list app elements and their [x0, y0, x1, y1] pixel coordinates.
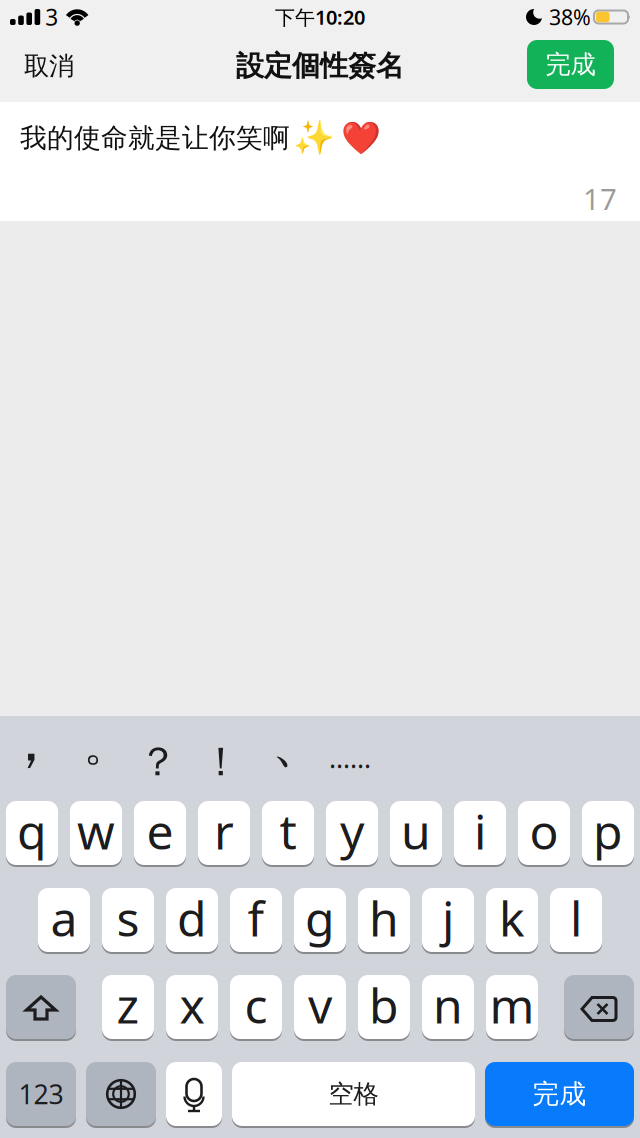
- staticText: d: [177, 886, 207, 950]
- staticText: r: [214, 799, 234, 863]
- staticText: t: [279, 799, 296, 863]
- button[interactable]: b: [358, 975, 410, 1039]
- button[interactable]: ！: [190, 722, 252, 802]
- button[interactable]: q: [6, 801, 58, 865]
- button[interactable]: l: [550, 888, 602, 952]
- staticText: q: [17, 799, 47, 863]
- staticText: z: [116, 973, 139, 1037]
- staticText: p: [593, 799, 623, 863]
- button[interactable]: i: [454, 801, 506, 865]
- button[interactable]: o: [518, 801, 570, 865]
- staticText: s: [116, 886, 139, 950]
- button[interactable]: 空格: [232, 1062, 475, 1126]
- button[interactable]: y: [326, 801, 378, 865]
- staticText: ！: [201, 737, 241, 786]
- staticText: 3: [45, 2, 58, 32]
- button[interactable]: f: [230, 888, 282, 952]
- staticText: ，: [1, 705, 60, 777]
- staticText: m: [489, 973, 534, 1037]
- staticText: 取消: [24, 50, 74, 81]
- staticText: ❤️: [341, 120, 381, 156]
- button[interactable]: [86, 1062, 156, 1126]
- staticText: a: [50, 886, 77, 950]
- staticText: ✨: [293, 119, 335, 157]
- button[interactable]: g: [294, 888, 346, 952]
- staticText: 17: [583, 179, 617, 218]
- staticText: v: [308, 973, 332, 1037]
- staticText: 完成: [532, 1078, 586, 1110]
- button[interactable]: w: [70, 801, 122, 865]
- button[interactable]: [6, 975, 76, 1039]
- staticText: x: [179, 973, 204, 1037]
- staticText: ……: [329, 740, 371, 776]
- staticText: l: [570, 886, 582, 950]
- staticText: e: [146, 799, 173, 863]
- button[interactable]: 、: [267, 703, 329, 783]
- button[interactable]: [166, 1062, 222, 1126]
- button[interactable]: h: [358, 888, 410, 952]
- staticText: o: [529, 799, 558, 863]
- staticText: f: [247, 886, 264, 950]
- button[interactable]: 完成: [485, 1062, 634, 1126]
- button[interactable]: 。: [75, 705, 137, 785]
- button[interactable]: 取消: [24, 50, 74, 81]
- staticText: 我的使命就是让你笑啊: [20, 122, 290, 154]
- staticText: y: [340, 799, 364, 863]
- button[interactable]: v: [294, 975, 346, 1039]
- button[interactable]: [564, 975, 634, 1039]
- button[interactable]: s: [102, 888, 154, 952]
- staticText: g: [305, 886, 335, 950]
- staticText: 下午10:20: [275, 4, 365, 30]
- button[interactable]: t: [262, 801, 314, 865]
- staticText: 123: [18, 1076, 63, 1112]
- staticText: n: [433, 973, 463, 1037]
- button[interactable]: j: [422, 888, 474, 952]
- button[interactable]: z: [102, 975, 154, 1039]
- button[interactable]: n: [422, 975, 474, 1039]
- button[interactable]: d: [166, 888, 218, 952]
- staticText: u: [401, 799, 431, 863]
- staticText: 38%: [549, 3, 591, 31]
- staticText: 完成: [545, 49, 595, 80]
- staticText: j: [442, 886, 454, 950]
- button[interactable]: ，: [0, 701, 62, 781]
- staticText: i: [474, 799, 486, 863]
- button[interactable]: ……: [319, 718, 381, 798]
- button[interactable]: a: [38, 888, 90, 952]
- staticText: 空格: [328, 1078, 378, 1109]
- button[interactable]: x: [166, 975, 218, 1039]
- staticText: ？: [138, 737, 178, 786]
- button[interactable]: 123: [6, 1062, 76, 1126]
- staticText: k: [499, 886, 525, 950]
- button[interactable]: 完成: [527, 40, 614, 89]
- staticText: 設定個性簽名: [236, 49, 404, 83]
- staticText: 、: [271, 710, 324, 776]
- staticText: w: [77, 799, 115, 863]
- button[interactable]: e: [134, 801, 186, 865]
- button[interactable]: u: [390, 801, 442, 865]
- button[interactable]: c: [230, 975, 282, 1039]
- button[interactable]: ？: [127, 722, 189, 802]
- staticText: c: [244, 973, 267, 1037]
- staticText: h: [369, 886, 399, 950]
- staticText: 。: [83, 717, 128, 773]
- button[interactable]: m: [486, 975, 538, 1039]
- button[interactable]: k: [486, 888, 538, 952]
- staticText: b: [369, 973, 399, 1037]
- button[interactable]: r: [198, 801, 250, 865]
- button[interactable]: p: [582, 801, 634, 865]
